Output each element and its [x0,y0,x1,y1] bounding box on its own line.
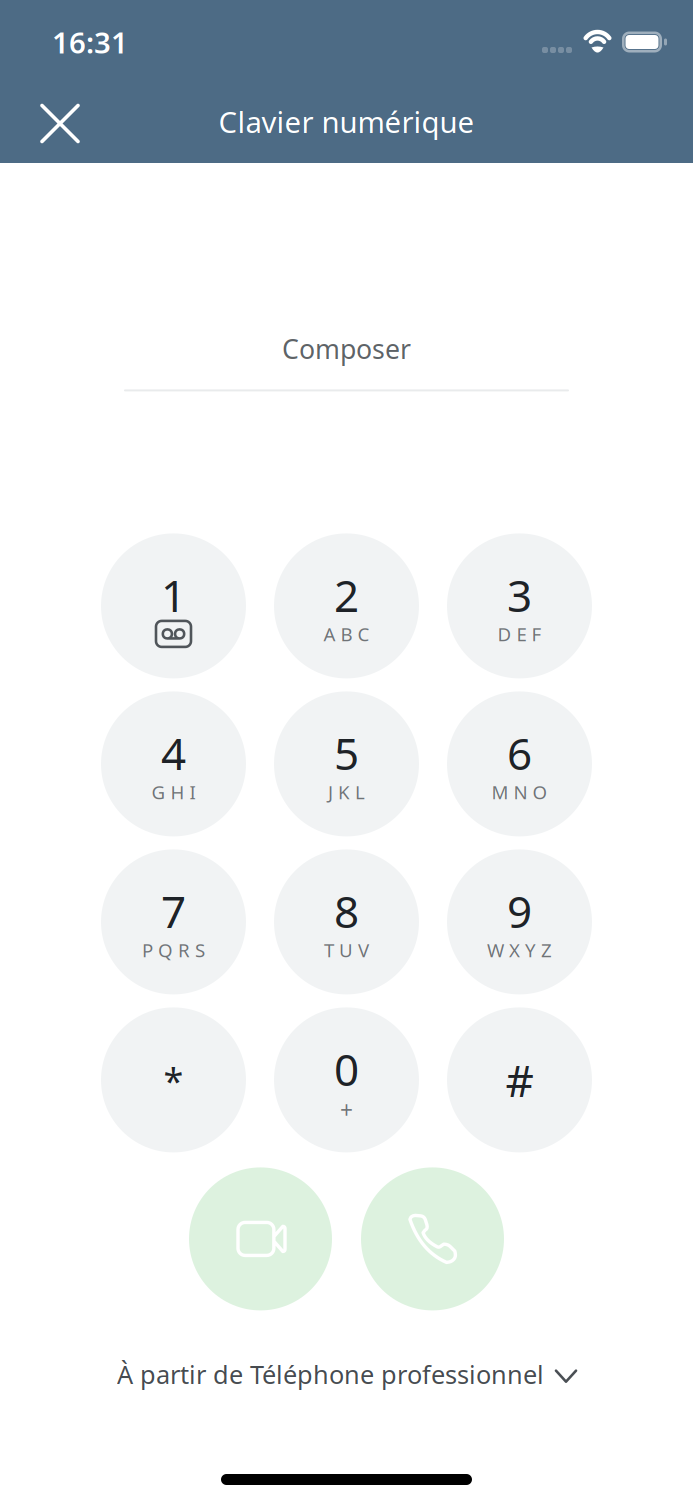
button[interactable]: 5 [274,691,419,836]
staticText: * [163,1056,183,1104]
button[interactable]: Call [361,1167,504,1310]
button[interactable]: Close [0,83,108,163]
button[interactable]: 0 [274,1007,419,1152]
button[interactable]: 7 [101,849,246,994]
staticText: 0 [334,1040,359,1098]
staticText: 2 [334,566,359,624]
staticText: P Q R S [142,937,205,962]
button[interactable]: * [101,1007,246,1152]
button[interactable]: 8 [274,849,419,994]
staticText: 7 [161,882,186,940]
staticText: 1 [161,566,186,624]
button[interactable]: 6 [447,691,592,836]
button[interactable]: 3 [447,533,592,678]
staticText: 16:31 [52,22,128,61]
staticText: W X Y Z [487,937,552,962]
staticText: 4 [161,724,186,782]
staticText: 9 [507,882,532,940]
button[interactable]: 9 [447,849,592,994]
staticText: J K L [328,779,365,804]
button[interactable]: Video call [189,1167,332,1310]
staticText: # [505,1051,533,1109]
staticText: + [340,1095,353,1125]
staticText: Composer [282,331,411,366]
staticText: 3 [507,566,532,624]
button[interactable]: 4 [101,691,246,836]
button[interactable]: # [447,1007,592,1152]
staticText: A B C [323,621,369,646]
staticText: 5 [334,724,359,782]
staticText: G H I [151,779,195,804]
staticText: M N O [491,779,547,804]
staticText: À partir de Téléphone professionnel [117,1357,544,1391]
button[interactable]: À partir de Téléphone professionnel [0,1344,693,1404]
button[interactable]: 2 [274,533,419,678]
staticText: Clavier numérique [218,102,474,141]
staticText: D E F [497,621,541,646]
button[interactable]: 1 [101,533,246,678]
staticText: 8 [334,882,359,940]
staticText: T U V [324,937,369,962]
staticText: 6 [507,724,532,782]
